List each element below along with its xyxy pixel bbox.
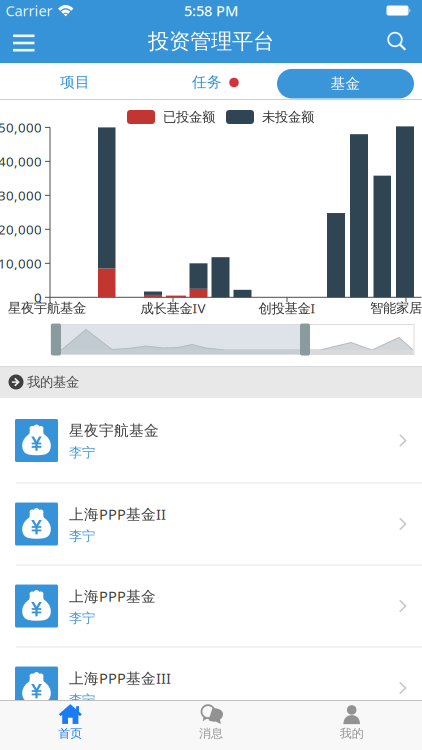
staticText: 项目 bbox=[60, 73, 90, 91]
button[interactable]: 我的 bbox=[282, 698, 422, 746]
staticText: 创投基金I bbox=[258, 299, 315, 317]
staticText: 李宁 bbox=[69, 444, 95, 461]
staticText: 李宁 bbox=[69, 692, 95, 708]
staticText: 我的 bbox=[340, 726, 364, 741]
staticText: 30,000 bbox=[0, 186, 42, 204]
button[interactable]: Zoom range start bbox=[51, 323, 61, 355]
staticText: 星夜宇航基金 bbox=[8, 300, 86, 316]
staticText: 我的基金 bbox=[27, 374, 79, 390]
staticText: 投资管理平台 bbox=[148, 28, 274, 55]
staticText: 20,000 bbox=[0, 220, 42, 238]
staticText: 50,000 bbox=[0, 118, 42, 136]
staticText: 任务 bbox=[192, 73, 222, 91]
button[interactable]: Menu bbox=[2, 23, 46, 59]
staticText: 10,000 bbox=[0, 254, 42, 272]
staticText: 5:58 PM bbox=[184, 1, 238, 20]
button[interactable]: 星夜宇航基金 bbox=[0, 398, 422, 483]
button[interactable]: 上海PPP基金II bbox=[0, 483, 422, 565]
button[interactable]: 首页 bbox=[0, 698, 140, 746]
staticText: 智能家居基金 bbox=[370, 300, 422, 316]
staticText: 上海PPP基金III bbox=[69, 668, 171, 688]
staticText: 李宁 bbox=[69, 610, 95, 626]
button[interactable]: 项目 bbox=[30, 65, 120, 99]
button[interactable]: 消息 bbox=[141, 698, 281, 746]
button[interactable]: Zoom range end bbox=[300, 323, 310, 355]
staticText: Carrier bbox=[5, 1, 52, 20]
staticText: 基金 bbox=[330, 75, 360, 93]
staticText: 上海PPP基金II bbox=[69, 504, 166, 524]
button[interactable]: 基金 bbox=[277, 69, 414, 98]
button[interactable]: Search bbox=[379, 23, 415, 59]
staticText: 已投金额 bbox=[163, 109, 215, 125]
staticText: 上海PPP基金 bbox=[69, 586, 156, 606]
staticText: 40,000 bbox=[0, 152, 42, 170]
staticText: 未投金额 bbox=[262, 109, 314, 125]
staticText: 0 bbox=[34, 288, 42, 306]
staticText: 消息 bbox=[199, 726, 223, 741]
staticText: 星夜宇航基金 bbox=[69, 421, 159, 439]
staticText: 成长基金IV bbox=[140, 299, 205, 317]
button[interactable]: 任务 bbox=[162, 65, 252, 99]
button[interactable]: 上海PPP基金III bbox=[0, 647, 422, 729]
staticText: 首页 bbox=[58, 726, 82, 741]
button[interactable]: 上海PPP基金 bbox=[0, 565, 422, 647]
staticText: 李宁 bbox=[69, 528, 95, 544]
